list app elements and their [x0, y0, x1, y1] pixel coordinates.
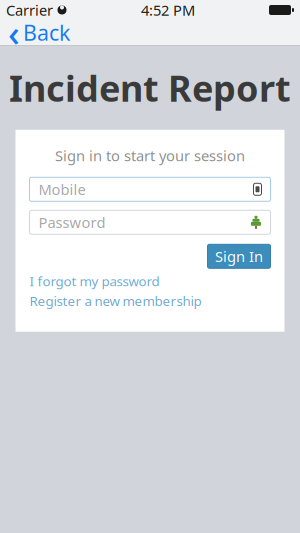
staticText: Password [38, 212, 105, 232]
button[interactable]: Register a new membership [29, 292, 201, 310]
staticText: ‹ [8, 9, 20, 56]
staticText: 4:52 PM [141, 0, 195, 20]
staticText: Sign in to start your session [55, 146, 245, 165]
staticText: Carrier [6, 0, 53, 20]
button[interactable]: ‹ [0, 20, 80, 45]
staticText: I forgot my password [29, 272, 159, 290]
button[interactable]: Sign In [207, 244, 270, 268]
staticText: Register a new membership [29, 292, 201, 310]
staticText: Sign In [215, 246, 263, 266]
staticText: Mobile [38, 179, 85, 199]
staticText: Back [23, 18, 70, 47]
button[interactable]: I forgot my password [29, 272, 159, 290]
staticText: Incident Report [9, 64, 291, 112]
